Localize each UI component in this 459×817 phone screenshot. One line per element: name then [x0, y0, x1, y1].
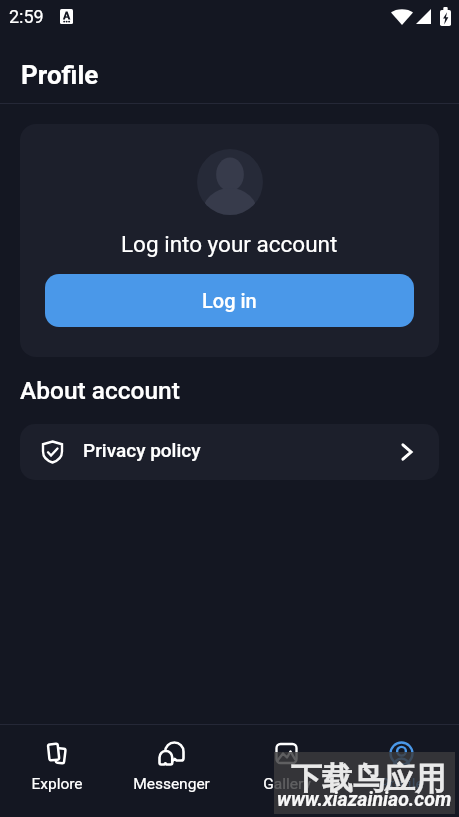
staticText: Log in — [202, 289, 257, 312]
staticText: Gallery — [263, 775, 311, 793]
button[interactable]: Privacy policy — [20, 424, 439, 480]
button[interactable]: Messenger — [114, 724, 229, 817]
staticText: About account — [20, 376, 180, 405]
button[interactable]: Gallery — [229, 724, 344, 817]
staticText: Log into your account — [121, 231, 338, 257]
button[interactable]: Profile — [344, 724, 459, 817]
button[interactable]: Log in — [45, 274, 414, 327]
staticText: Profile — [21, 60, 99, 90]
button[interactable]: Explore — [0, 724, 114, 817]
staticText: Messenger — [133, 775, 210, 793]
staticText: 2:59 — [9, 6, 44, 27]
other: Open privacy policy — [401, 443, 413, 461]
staticText: 下载鸟应用 — [291, 759, 446, 798]
staticText: Privacy policy — [83, 439, 201, 461]
staticText: www.xiazainiao.com — [277, 788, 452, 811]
staticText: Profile — [379, 775, 424, 793]
staticText: Explore — [31, 775, 83, 793]
